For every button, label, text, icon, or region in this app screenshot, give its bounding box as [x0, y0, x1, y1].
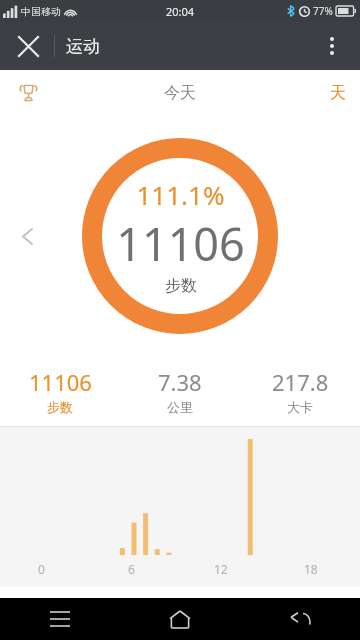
button[interactable]: Achievements [8, 73, 48, 113]
staticText: 7.38 [158, 367, 202, 397]
staticText: 步数 [47, 399, 73, 415]
button[interactable]: More options [312, 26, 352, 66]
button[interactable]: 7.38 [120, 363, 240, 419]
staticText: 今天 [164, 83, 196, 103]
staticText: 大卡 [287, 399, 313, 415]
staticText: 217.8 [272, 367, 329, 397]
staticText: 运动 [66, 36, 100, 57]
staticText: 6 [128, 561, 135, 577]
staticText: 公里 [167, 399, 193, 415]
staticText: 111.1% [136, 177, 225, 212]
button[interactable]: Previous day [10, 219, 44, 253]
staticText: 77% [313, 4, 333, 18]
button[interactable]: 217.8 [240, 363, 360, 419]
staticText: 18 [304, 561, 318, 577]
button[interactable]: Menu [0, 598, 120, 640]
staticText: 中国移动 [21, 5, 61, 18]
button[interactable]: Close [8, 26, 48, 66]
staticText: 11106 [29, 367, 92, 397]
staticText: 步数 [165, 276, 197, 296]
staticText: 12 [214, 561, 228, 577]
staticText: 11106 [116, 213, 245, 274]
staticText: 20:04 [166, 4, 195, 19]
staticText: 0 [38, 561, 45, 577]
staticText: 天 [330, 83, 346, 103]
button[interactable]: 11106 [0, 363, 120, 419]
button[interactable]: 天 [316, 77, 360, 109]
button[interactable]: Back [240, 598, 360, 640]
button[interactable]: 今天 [144, 77, 216, 109]
button[interactable]: Home [120, 598, 240, 640]
